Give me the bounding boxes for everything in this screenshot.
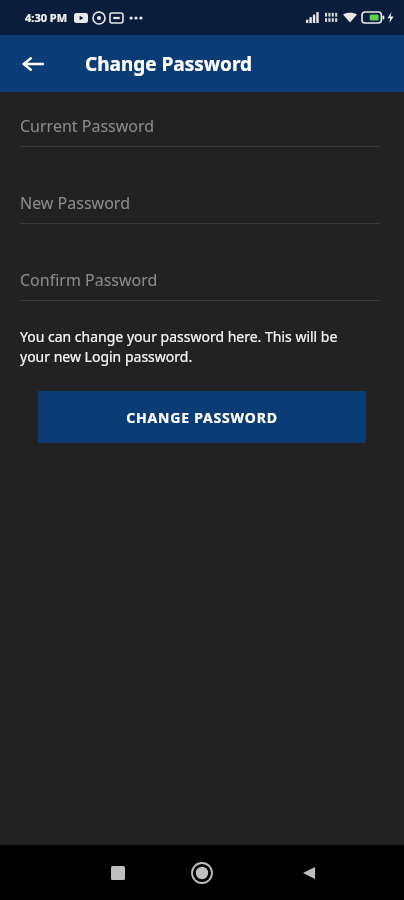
staticText: CHANGE PASSWORD [126, 408, 278, 427]
staticText: You can change your password here. This … [20, 327, 360, 367]
staticText: 4:30 PM [25, 10, 68, 25]
staticText: New Password [20, 192, 130, 214]
button[interactable]: Recents [94, 849, 142, 897]
button[interactable]: CHANGE PASSWORD [38, 391, 366, 443]
staticText: Change Password [85, 51, 253, 77]
button[interactable]: Back [285, 849, 333, 897]
button[interactable]: New Password [20, 192, 380, 224]
button[interactable]: Confirm Password [20, 269, 380, 301]
button[interactable]: Current Password [20, 115, 380, 147]
staticText: Confirm Password [20, 269, 158, 291]
button[interactable]: Back [12, 43, 54, 85]
staticText: Current Password [20, 115, 155, 137]
button[interactable]: Home [178, 849, 226, 897]
